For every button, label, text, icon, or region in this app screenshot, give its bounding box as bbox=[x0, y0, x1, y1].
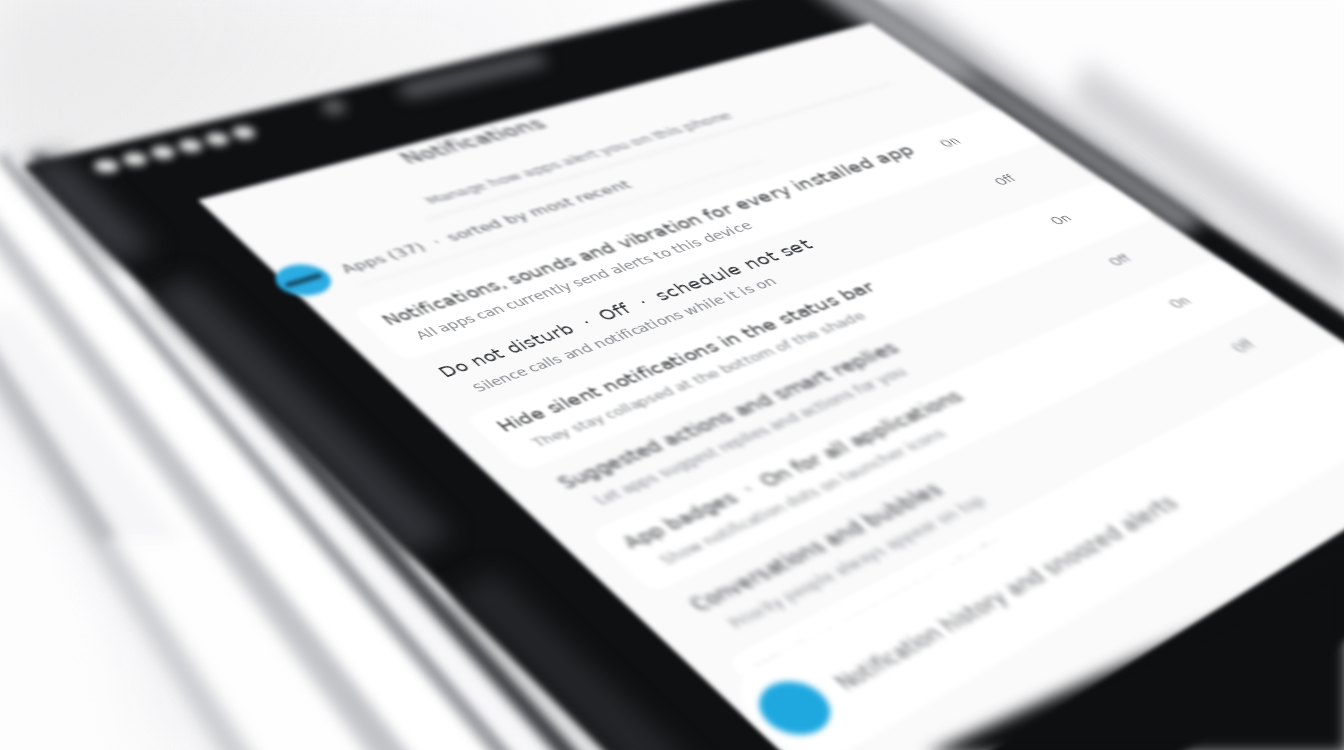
button[interactable]: Phone showing a notifications list bbox=[0, 0, 1344, 750]
